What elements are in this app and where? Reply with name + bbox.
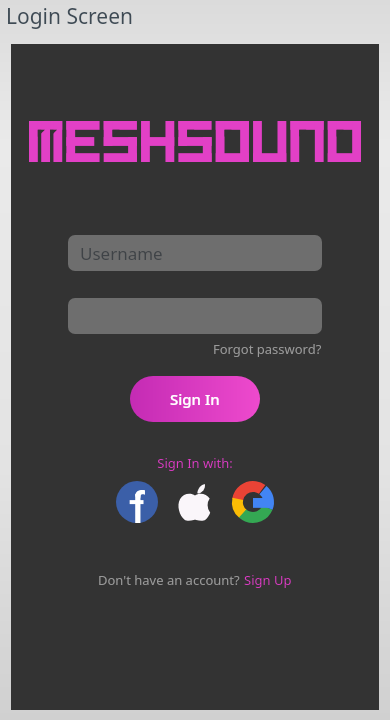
button[interactable]: Sign in with Google <box>232 481 274 523</box>
staticText: Sign In with: <box>11 454 379 472</box>
staticText: Don't have an account? <box>98 571 244 589</box>
button[interactable]: Sign in with Apple <box>174 481 216 523</box>
button[interactable]: Sign in with Facebook <box>116 481 158 523</box>
button[interactable]: Sign Up <box>244 571 292 589</box>
staticText: Username <box>80 242 163 265</box>
staticText: Login Screen <box>6 2 134 31</box>
button[interactable]: Username <box>68 235 322 271</box>
button[interactable] <box>68 298 322 334</box>
button[interactable]: Sign In <box>130 376 260 422</box>
button[interactable]: Forgot password? <box>213 340 322 358</box>
staticText: Sign In <box>170 389 220 409</box>
